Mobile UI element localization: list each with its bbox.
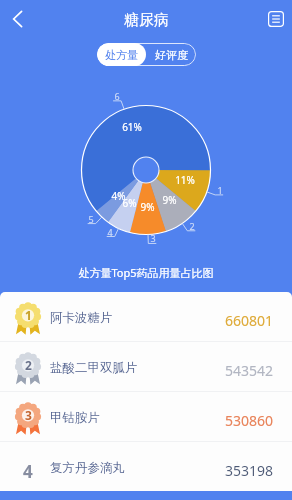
staticText: 4 [23, 460, 33, 483]
staticText: 530860 [225, 411, 274, 430]
staticText: 3 [150, 232, 156, 244]
staticText: 6% [122, 196, 137, 210]
staticText: 3 [25, 407, 32, 423]
staticText: 9% [162, 193, 177, 207]
staticText: 4% [111, 189, 126, 203]
button[interactable]: 3 [0, 392, 292, 441]
staticText: 11% [175, 173, 195, 187]
staticText: 1 [25, 307, 32, 323]
staticText: 9% [140, 200, 155, 214]
staticText: 处方量 [105, 48, 138, 62]
button[interactable]: 处方量 [97, 43, 146, 66]
staticText: 1 [217, 184, 223, 196]
button[interactable]: 2 [0, 342, 292, 391]
staticText: 2 [25, 357, 32, 373]
staticText: 5 [88, 213, 94, 225]
staticText: 4 [107, 226, 113, 238]
staticText: 处方量Top5药品用量占比图 [0, 265, 292, 280]
button[interactable]: 好评度 [146, 43, 196, 66]
staticText: 盐酸二甲双胍片 [50, 360, 138, 376]
staticText: 61% [122, 120, 142, 134]
staticText: 甲钴胺片 [50, 410, 100, 426]
staticText: 353198 [225, 461, 274, 480]
staticText: 复方丹参滴丸 [50, 460, 125, 476]
button[interactable]: Menu [261, 5, 291, 35]
button[interactable]: 4 [0, 442, 292, 491]
staticText: 糖尿病 [124, 11, 169, 30]
button[interactable]: Back [0, 0, 40, 40]
staticText: 660801 [225, 311, 274, 330]
staticText: 2 [189, 220, 195, 232]
staticText: 543542 [225, 361, 274, 380]
button[interactable]: 1 [0, 292, 292, 341]
staticText: 6 [114, 90, 120, 102]
staticText: 好评度 [155, 48, 188, 62]
staticText: 阿卡波糖片 [50, 310, 113, 326]
